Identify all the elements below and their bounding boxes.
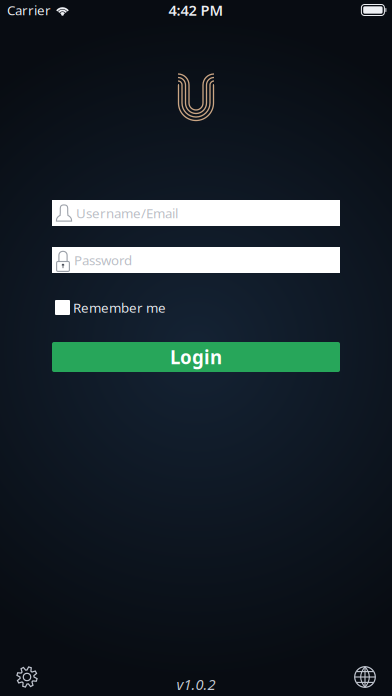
staticText: Password xyxy=(74,251,132,269)
staticText: Remember me xyxy=(73,299,166,316)
button[interactable]: Settings xyxy=(16,666,38,688)
button[interactable]: Language xyxy=(354,666,376,688)
button[interactable]: Login xyxy=(52,342,340,372)
staticText: 4:42 PM xyxy=(168,0,223,20)
button[interactable]: Remember me xyxy=(52,299,166,316)
staticText: Carrier xyxy=(7,1,51,19)
staticText: v1.0.2 xyxy=(176,674,215,694)
staticText: Username/Email xyxy=(76,204,178,222)
staticText: Login xyxy=(170,345,222,369)
